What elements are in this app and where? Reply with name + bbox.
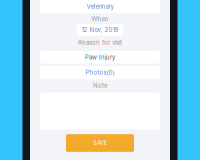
button[interactable]: Photos(0) xyxy=(40,66,160,79)
staticText: 12 Nov, 2019 xyxy=(81,26,118,33)
staticText: Photos(0) xyxy=(85,69,114,76)
staticText: Veterinary xyxy=(86,3,113,10)
button[interactable]: Paw Injury xyxy=(40,51,160,63)
staticText: Reason for visit xyxy=(78,39,122,46)
staticText: When xyxy=(91,15,108,23)
staticText: Paw Injury xyxy=(85,54,115,61)
staticText: Note xyxy=(93,82,107,89)
staticText: SAVE xyxy=(93,140,107,146)
button[interactable]: SAVE xyxy=(66,134,134,152)
button[interactable]: 12 Nov, 2019 xyxy=(77,24,123,35)
button[interactable]: Veterinary xyxy=(40,0,160,13)
